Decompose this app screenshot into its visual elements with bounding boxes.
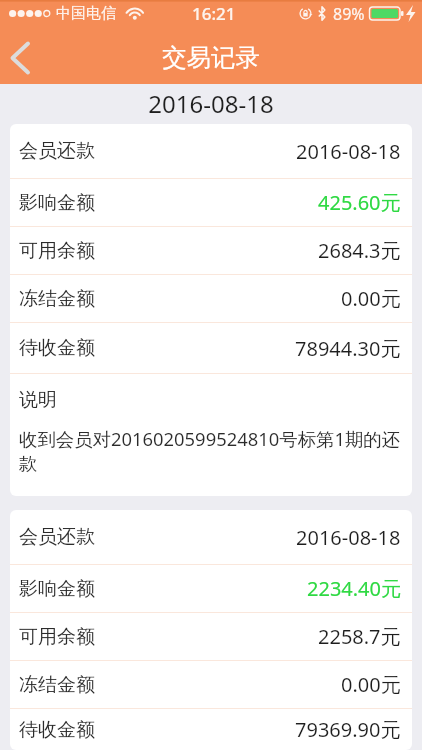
staticText: 79369.90元 <box>295 716 401 743</box>
staticText: 0.00元 <box>341 285 401 312</box>
staticText: 待收金额 <box>19 718 95 742</box>
staticText: 16:21 <box>192 2 236 25</box>
staticText: 冻结金额 <box>19 673 95 697</box>
staticText: 425.60元 <box>318 189 401 216</box>
staticText: 78944.30元 <box>295 335 401 362</box>
staticText: 2016-08-18 <box>296 138 401 165</box>
staticText: 可用余额 <box>19 239 95 263</box>
staticText: 0.00元 <box>341 671 401 698</box>
staticText: 2684.3元 <box>318 237 401 264</box>
staticText: 2016-08-18 <box>148 87 274 120</box>
button[interactable]: Back <box>0 30 52 82</box>
button[interactable]: 会员还款 <box>10 510 412 750</box>
staticText: 会员还款 <box>19 525 95 549</box>
staticText: 89% <box>333 3 365 25</box>
staticText: 2234.40元 <box>307 575 401 602</box>
staticText: 2258.7元 <box>318 623 401 650</box>
staticText: 说明 <box>19 388 57 412</box>
staticText: 收到会员对2016020599524810号标第1期的还款 <box>19 426 412 475</box>
staticText: 影响金额 <box>19 191 95 215</box>
staticText: 冻结金额 <box>19 287 95 311</box>
staticText: 待收金额 <box>19 336 95 360</box>
staticText: 2016-08-18 <box>296 524 401 551</box>
staticText: 影响金额 <box>19 577 95 601</box>
button[interactable]: 会员还款 <box>10 124 412 496</box>
staticText: 会员还款 <box>19 139 95 163</box>
staticText: 交易记录 <box>162 42 260 73</box>
staticText: 中国电信 <box>56 4 116 23</box>
staticText: 可用余额 <box>19 625 95 649</box>
